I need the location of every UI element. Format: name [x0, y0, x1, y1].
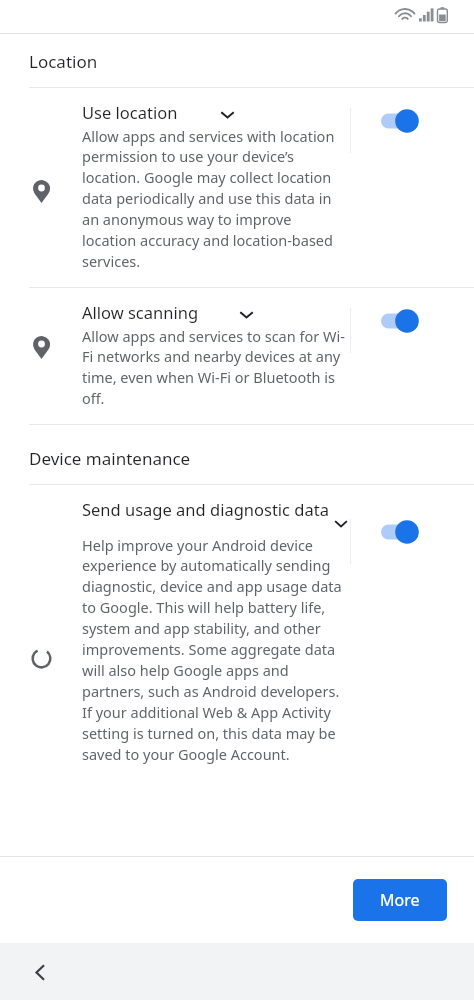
staticText: Send usage and diagnostic data — [82, 498, 332, 520]
button[interactable]: Use location — [0, 88, 474, 287]
button[interactable]: Expand Send usage and diagnostic data — [332, 514, 350, 533]
staticText: Location — [29, 50, 98, 73]
button[interactable]: Expand Allow scanning — [237, 305, 256, 324]
staticText: Device maintenance — [29, 447, 191, 470]
staticText: Allow apps and services to scan for Wi-F… — [82, 326, 347, 408]
button[interactable]: Send usage and diagnostic data — [0, 485, 474, 780]
button[interactable]: Allow scanning — [0, 288, 474, 424]
button[interactable]: More — [353, 879, 447, 921]
staticText: Allow apps and services with location pe… — [82, 126, 347, 271]
button[interactable]: Toggle setting — [378, 517, 426, 547]
button[interactable]: Toggle setting — [378, 306, 426, 336]
staticText: More — [380, 889, 420, 911]
button[interactable]: Toggle setting — [378, 106, 426, 136]
staticText: Help improve your Android device experie… — [82, 535, 347, 764]
staticText: Use location — [82, 101, 218, 123]
staticText: Allow scanning — [82, 301, 237, 323]
button[interactable]: Expand Use location — [218, 105, 237, 124]
button[interactable]: Back — [24, 956, 56, 988]
